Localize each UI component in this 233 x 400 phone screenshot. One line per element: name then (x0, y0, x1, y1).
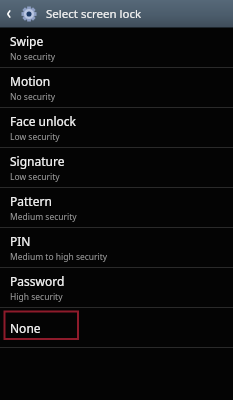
staticText: PIN (10, 233, 31, 249)
button[interactable]: Motion (0, 68, 233, 107)
staticText: Medium to high security (10, 251, 108, 263)
staticText: Swipe (10, 33, 44, 49)
staticText: Medium security (10, 211, 77, 223)
staticText: Signature (10, 153, 65, 169)
staticText: Pattern (10, 193, 52, 209)
staticText: None (10, 320, 41, 336)
button[interactable]: Face unlock (0, 108, 233, 147)
staticText: No security (10, 51, 56, 63)
button[interactable]: Navigate up (0, 0, 18, 28)
staticText: Low security (10, 131, 60, 143)
button[interactable]: PIN (0, 228, 233, 267)
staticText: Password (10, 273, 65, 289)
staticText: Face unlock (10, 113, 76, 129)
button[interactable]: Password (0, 268, 233, 307)
staticText: Select screen lock (46, 6, 142, 22)
staticText: Low security (10, 171, 60, 183)
button[interactable]: Pattern (0, 188, 233, 227)
button[interactable]: None (0, 308, 233, 347)
staticText: High security (10, 291, 63, 303)
button[interactable]: Swipe (0, 28, 233, 67)
staticText: Motion (10, 73, 51, 89)
button[interactable]: Signature (0, 148, 233, 187)
staticText: No security (10, 91, 56, 103)
